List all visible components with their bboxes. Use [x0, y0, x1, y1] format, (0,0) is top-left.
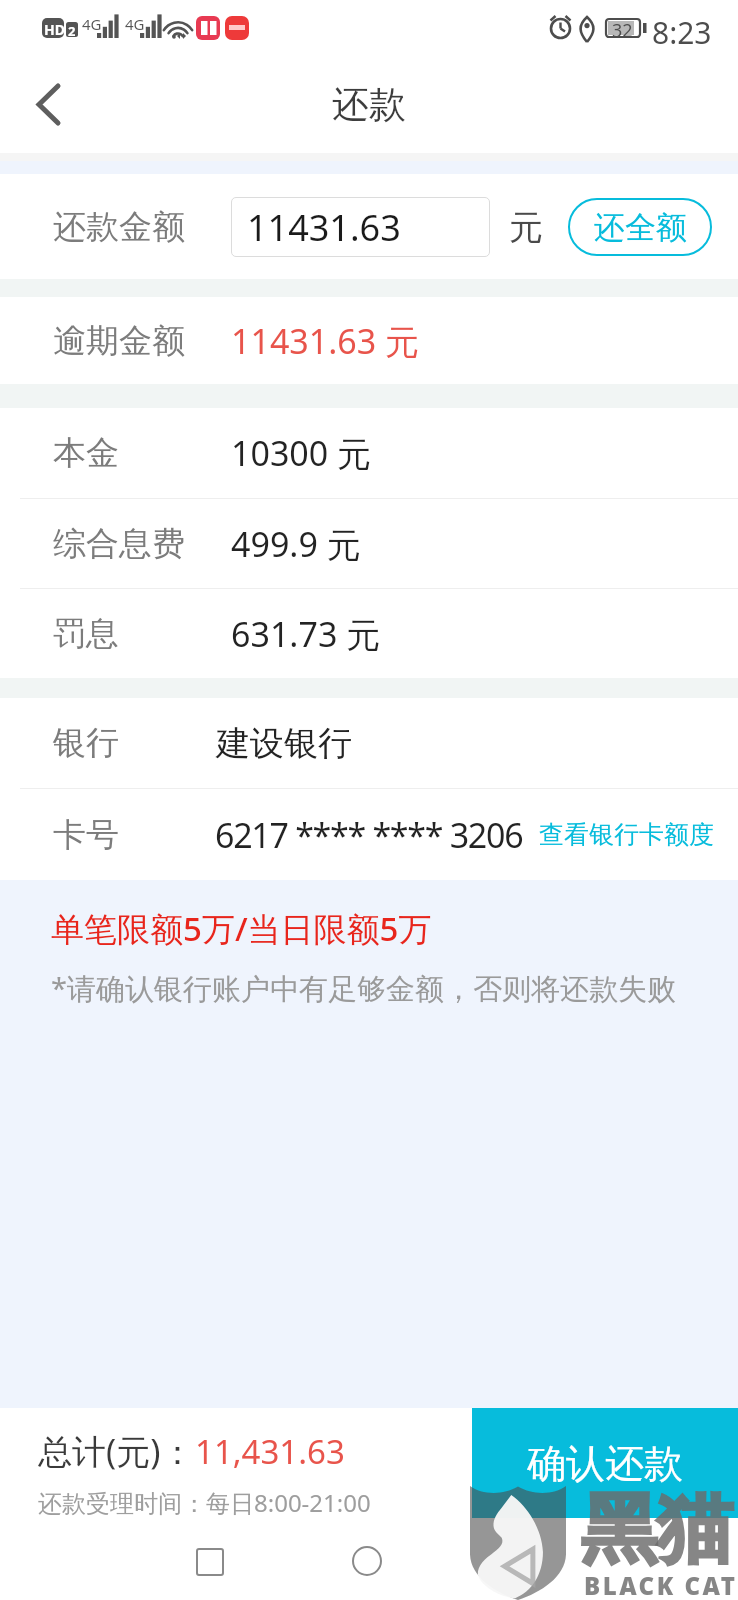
staticText: 2 [68, 22, 76, 40]
staticText: 逾期金额 [53, 320, 185, 362]
staticText: 查看银行卡额度 [539, 819, 714, 850]
staticText: 银行 [53, 722, 119, 764]
staticText: 单笔限额5万/当日限额5万 [51, 906, 432, 951]
staticText: 6217 **** **** 3206 [215, 812, 523, 858]
staticText: 元 [509, 206, 543, 249]
staticText: HD [44, 20, 65, 39]
button[interactable]: 查看银行卡额度 [539, 819, 714, 850]
staticText: *请确认银行账户中有足够金额，否则将还款失败 [51, 968, 676, 1008]
staticText: 10300 元 [231, 430, 372, 476]
staticText: BLACK CAT [584, 1569, 738, 1600]
staticText: 499.9 元 [231, 521, 361, 567]
staticText: 总计(元)： [38, 1428, 195, 1474]
staticText: 确认还款 [527, 1439, 683, 1488]
button[interactable]: Home [352, 1546, 382, 1576]
staticText: 11431.63 [247, 203, 401, 252]
staticText: 黑猫 [581, 1482, 733, 1578]
staticText: 综合息费 [53, 523, 185, 565]
staticText: 还款 [332, 81, 406, 128]
staticText: 还全额 [594, 208, 687, 247]
button[interactable]: 确认还款 [472, 1408, 738, 1518]
staticText: 4G [82, 14, 102, 34]
staticText: 11431.63 元 [231, 318, 420, 364]
staticText: 8:23 [652, 12, 712, 53]
staticText: 还款金额 [53, 206, 185, 248]
staticText: 本金 [53, 432, 119, 474]
button[interactable]: Back [0, 56, 96, 153]
staticText: 罚息 [53, 613, 119, 655]
staticText: 卡号 [53, 814, 119, 856]
staticText: 32 [612, 18, 633, 43]
button[interactable]: 还全额 [568, 198, 712, 256]
staticText: 11,431.63 [195, 1429, 345, 1474]
staticText: 还款受理时间：每日8:00-21:00 [38, 1486, 371, 1519]
staticText: 建设银行 [216, 722, 352, 765]
staticText: 4G [125, 14, 145, 34]
button[interactable]: Recents [196, 1548, 224, 1576]
staticText: 631.73 元 [231, 611, 381, 657]
